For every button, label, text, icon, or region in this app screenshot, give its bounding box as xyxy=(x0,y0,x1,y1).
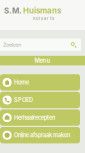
staticText: Herhaalrecepten xyxy=(14,114,55,121)
button[interactable]: Home xyxy=(0,74,80,91)
button[interactable]: Search xyxy=(69,40,78,49)
staticText: Huismans xyxy=(23,6,61,15)
staticText: Menu xyxy=(34,57,50,64)
button[interactable]: Online afspraak maken xyxy=(0,127,80,143)
button[interactable]: SPOED xyxy=(0,92,80,108)
staticText: Home xyxy=(14,79,29,86)
staticText: SPOED xyxy=(14,97,33,103)
staticText: Online afspraak maken xyxy=(14,132,70,139)
staticText: h u i s a r t s xyxy=(33,16,54,21)
button[interactable]: Herhaalrecepten xyxy=(0,109,80,126)
staticText: S.M. xyxy=(4,6,23,15)
staticText: Zoeken xyxy=(3,41,21,48)
